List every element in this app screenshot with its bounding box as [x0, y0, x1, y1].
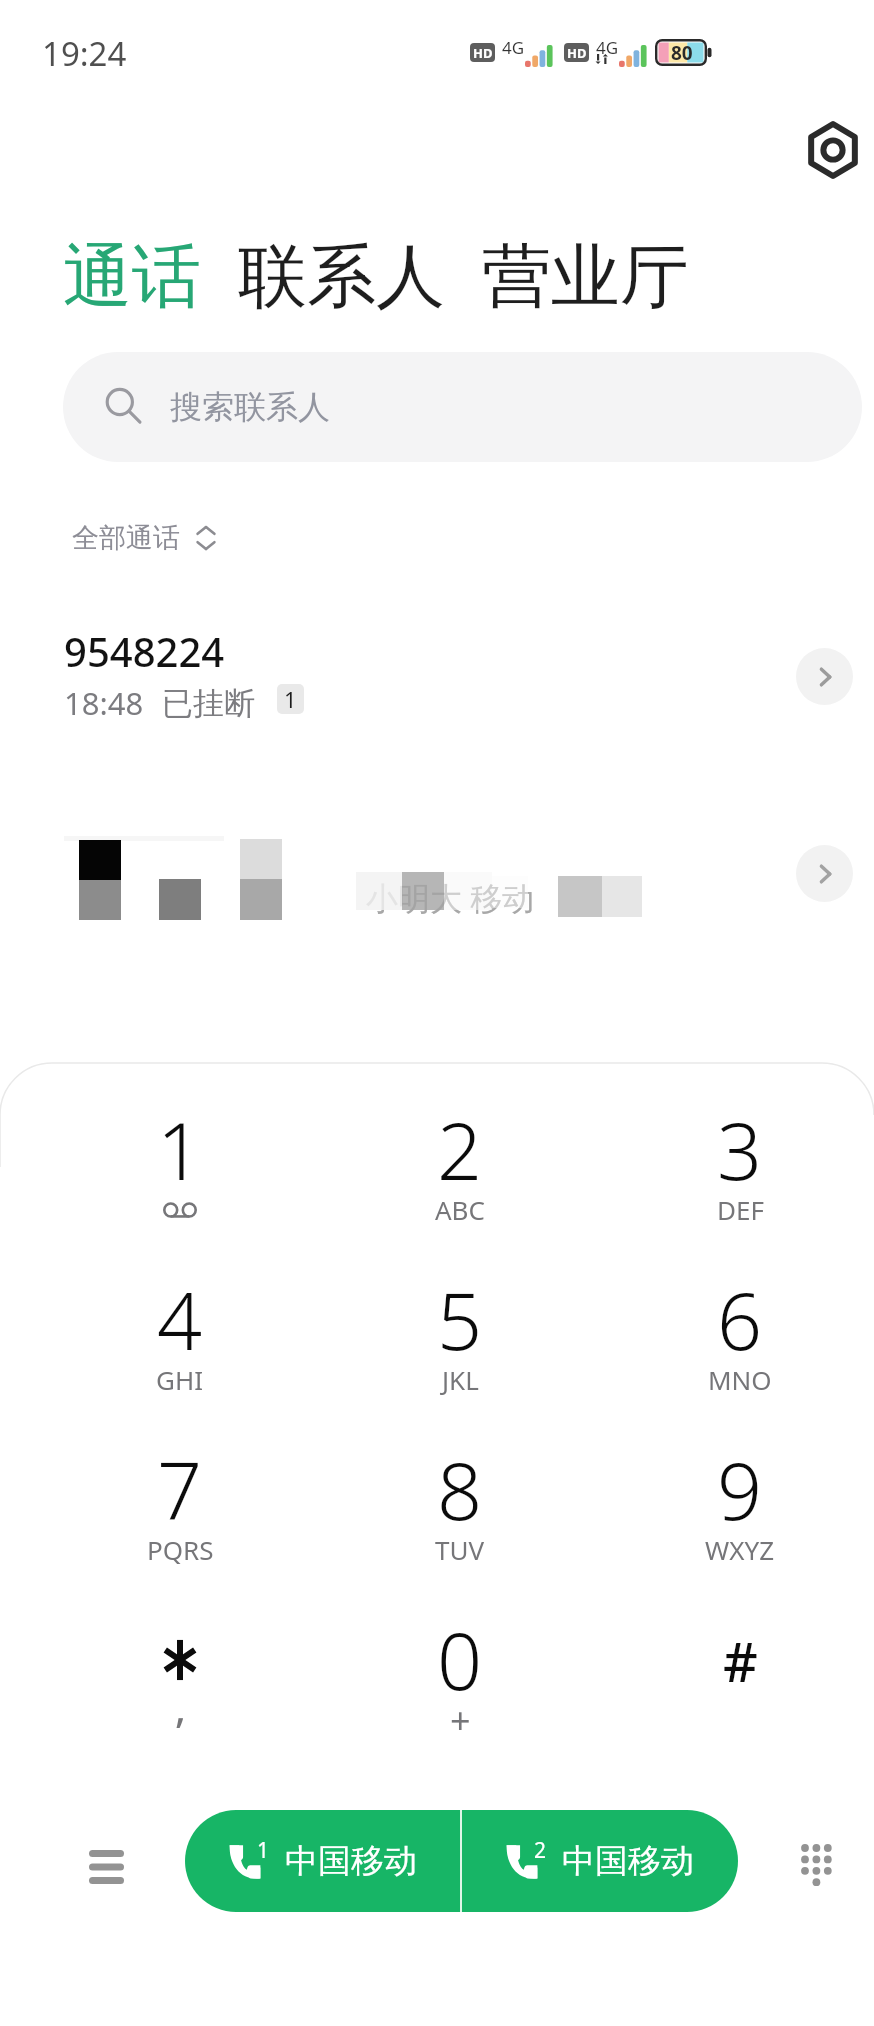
button[interactable]: 9548224	[0, 612, 874, 740]
staticText: 9	[717, 1436, 763, 1544]
staticText: 9548224	[64, 624, 225, 678]
button[interactable]: Key 5	[320, 1235, 600, 1405]
staticText: HD	[473, 44, 493, 62]
button[interactable]: 通话	[63, 234, 201, 321]
staticText: +	[450, 1696, 471, 1745]
staticText: 5	[437, 1266, 483, 1374]
staticText: 4G	[502, 36, 525, 59]
staticText: ,	[175, 1680, 186, 1734]
staticText: 19:24	[42, 31, 127, 76]
staticText: HD	[567, 44, 587, 62]
staticText: 中国移动	[285, 1840, 417, 1882]
button[interactable]: Key 8	[320, 1405, 600, 1575]
staticText: 小明大 移动	[366, 876, 535, 920]
button[interactable]: Key *	[40, 1575, 320, 1745]
button[interactable]: Settings	[801, 118, 865, 182]
button[interactable]: Dialpad	[778, 1826, 858, 1906]
button[interactable]: Key 6	[600, 1235, 874, 1405]
button[interactable]: 联系人	[238, 234, 445, 321]
button[interactable]: 营业厅	[482, 234, 689, 321]
staticText: GHI	[156, 1362, 204, 1397]
staticText: 已挂断	[162, 684, 255, 723]
button[interactable]: Key 0	[320, 1575, 600, 1745]
staticText: 18:48	[64, 682, 144, 724]
button[interactable]: Menu	[66, 1821, 146, 1901]
staticText: JKL	[442, 1362, 479, 1397]
staticText: PQRS	[147, 1532, 214, 1567]
button[interactable]: 小明大 移动	[0, 800, 874, 970]
staticText: 2	[437, 1096, 483, 1204]
button[interactable]: Key 9	[600, 1405, 874, 1575]
staticText: DEF	[717, 1192, 764, 1227]
button[interactable]: Call details	[796, 648, 853, 705]
staticText: 1	[157, 1096, 203, 1204]
button[interactable]: Key 2	[320, 1065, 600, 1235]
button[interactable]: 全部通话	[69, 518, 219, 558]
staticText: WXYZ	[705, 1532, 775, 1567]
staticText: 7	[157, 1436, 203, 1544]
button[interactable]: Key 7	[40, 1405, 320, 1575]
staticText: 4G	[596, 36, 619, 59]
staticText: 0	[437, 1606, 483, 1714]
button[interactable]: Key 1	[40, 1065, 320, 1235]
button[interactable]: 2	[462, 1810, 738, 1912]
button[interactable]: Key 3	[600, 1065, 874, 1235]
button[interactable]: 搜索联系人	[63, 352, 862, 462]
staticText: 4	[157, 1266, 203, 1374]
staticText: #	[723, 1624, 758, 1698]
staticText: 1	[284, 684, 297, 714]
button[interactable]: Call details	[796, 845, 853, 902]
staticText: 中国移动	[562, 1840, 694, 1882]
staticText: 搜索联系人	[170, 387, 330, 427]
staticText: MNO	[708, 1362, 772, 1397]
staticText: 80	[671, 40, 693, 66]
staticText: 2	[534, 1836, 547, 1865]
button[interactable]: Key #	[600, 1575, 874, 1745]
staticText: TUV	[435, 1532, 485, 1567]
button[interactable]: 1	[185, 1810, 460, 1912]
staticText: ABC	[435, 1192, 485, 1227]
staticText: 1	[257, 1836, 270, 1865]
staticText: 3	[717, 1096, 763, 1204]
staticText: 6	[717, 1266, 763, 1374]
staticText: 8	[437, 1436, 483, 1544]
staticText: 全部通话	[72, 521, 180, 555]
button[interactable]: Key 4	[40, 1235, 320, 1405]
